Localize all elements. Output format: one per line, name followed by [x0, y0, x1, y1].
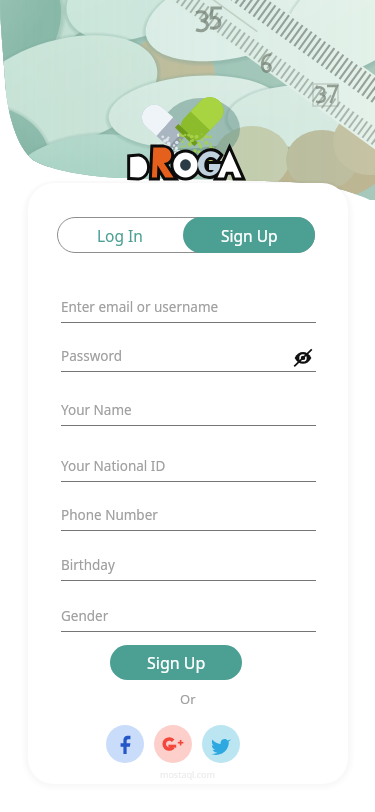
button[interactable]: Birthday: [61, 552, 316, 580]
button[interactable]: Google Plus: [154, 725, 192, 763]
staticText: Gender: [61, 607, 109, 625]
staticText: Password: [61, 347, 123, 365]
button[interactable]: Sign Up: [183, 217, 315, 253]
button[interactable]: Phone Number: [61, 502, 316, 530]
button[interactable]: Log In: [57, 217, 183, 253]
button[interactable]: Password: [61, 343, 316, 371]
button[interactable]: Twitter: [202, 725, 240, 763]
button[interactable]: Sign Up: [110, 645, 242, 680]
staticText: Phone Number: [61, 506, 158, 524]
button[interactable]: Show password: [290, 344, 316, 370]
staticText: Sign Up: [147, 652, 206, 674]
button[interactable]: Your National ID: [61, 453, 316, 481]
button[interactable]: Enter email or username: [61, 294, 316, 322]
staticText: Your Name: [61, 401, 132, 419]
staticText: Or: [180, 690, 196, 708]
staticText: Sign Up: [221, 225, 278, 246]
staticText: Log In: [97, 225, 143, 246]
staticText: Your National ID: [61, 457, 166, 475]
staticText: mostaql.com: [160, 768, 215, 780]
staticText: Birthday: [61, 556, 115, 574]
staticText: Enter email or username: [61, 298, 219, 316]
button[interactable]: Facebook: [106, 725, 144, 763]
button[interactable]: Your Name: [61, 397, 316, 425]
button[interactable]: Gender: [61, 603, 316, 631]
